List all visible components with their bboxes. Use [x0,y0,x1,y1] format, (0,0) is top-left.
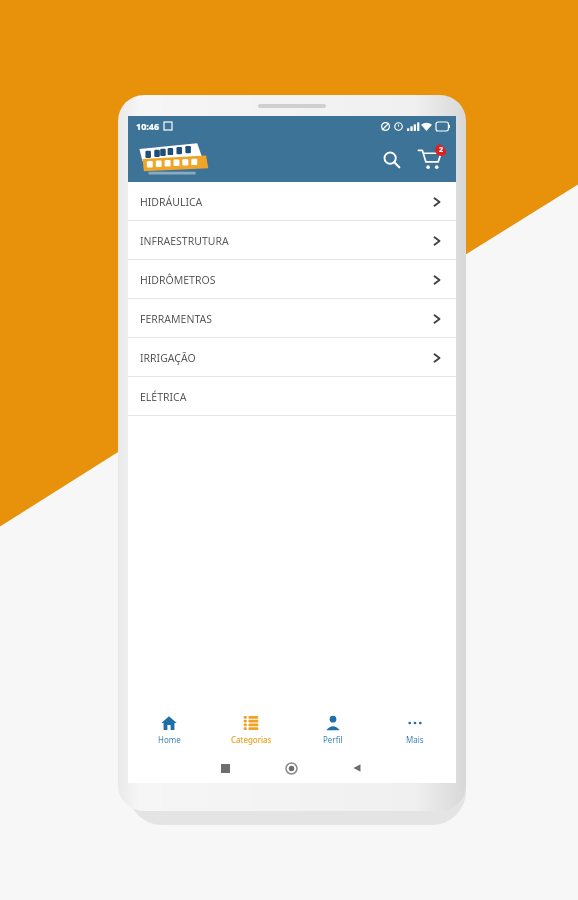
button[interactable]: IRRIGAÇÃO [128,338,456,377]
button[interactable]: Search [374,142,408,176]
button[interactable]: Hidrau Conex logo [138,141,212,177]
button[interactable]: Home [128,707,210,753]
button[interactable]: HIDRÁULICA [128,182,456,221]
button[interactable]: HIDRÔMETROS [128,260,456,299]
staticText: Perfil [323,734,343,745]
staticText: FERRAMENTAS [140,312,212,326]
button[interactable]: Home [258,753,324,783]
staticText: Home [158,734,181,745]
staticText: Mais [406,734,424,745]
button[interactable]: INFRAESTRUTURA [128,221,456,260]
button[interactable]: Perfil [292,707,374,753]
staticText: HIDRÁULICA [140,195,203,209]
staticText: IRRIGAÇÃO [140,351,196,365]
button[interactable]: FERRAMENTAS [128,299,456,338]
staticText: ELÉTRICA [140,390,187,404]
button[interactable]: Mais [374,707,456,753]
staticText: Categorias [231,734,272,745]
staticText: 2 [439,145,444,155]
staticText: INFRAESTRUTURA [140,234,229,248]
staticText: 10:46 [136,120,160,132]
button[interactable]: Categorias [210,707,292,753]
button[interactable]: Recents [193,753,258,783]
button[interactable]: Back [324,753,390,783]
staticText: HIDRÔMETROS [140,273,216,287]
button[interactable]: Cart, 2 items [412,141,448,177]
button[interactable]: ELÉTRICA [128,377,456,416]
